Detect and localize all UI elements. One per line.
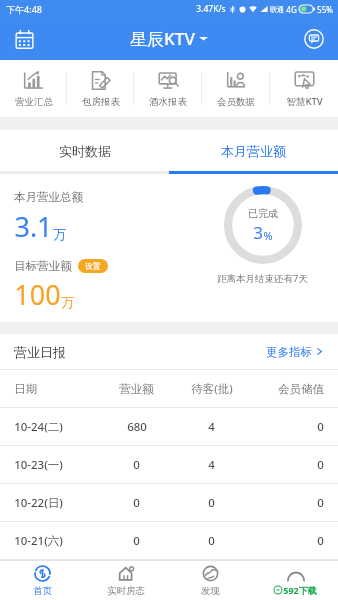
staticText: 智慧KTV xyxy=(286,95,323,108)
staticText: % xyxy=(263,228,273,243)
button[interactable]: 设置 xyxy=(78,259,108,273)
button[interactable]: 发现 xyxy=(168,561,253,600)
button[interactable]: 实时房态 xyxy=(84,561,168,600)
staticText: 更多指标 xyxy=(266,345,312,359)
staticText: 星辰KTV xyxy=(130,27,195,50)
staticText: 本月营业总额 xyxy=(14,190,83,204)
button[interactable]: 营业汇总 xyxy=(0,60,67,117)
staticText: 营业日报 xyxy=(14,344,66,360)
button[interactable]: 酒水报表 xyxy=(134,60,202,117)
staticText: 3.47K/s xyxy=(196,3,226,15)
button[interactable]: 包房报表 xyxy=(67,60,134,117)
staticText: 距离本月结束还有7天 xyxy=(217,272,308,285)
staticText: 0 xyxy=(208,533,215,549)
staticText: 4G xyxy=(286,4,297,15)
staticText: 下午4:48 xyxy=(6,3,42,15)
button[interactable]: Calendar xyxy=(9,24,39,54)
staticText: 0 xyxy=(317,419,324,435)
button[interactable]: 10-24(二) xyxy=(0,408,338,445)
staticText: 0 xyxy=(317,533,324,549)
button[interactable]: 会员数据 xyxy=(202,60,270,117)
staticText: 3 xyxy=(253,221,263,244)
staticText: 酒水报表 xyxy=(149,96,187,108)
button[interactable]: 实时数据 xyxy=(0,130,169,171)
staticText: 4 xyxy=(208,457,215,473)
staticText: 0 xyxy=(133,495,140,511)
button[interactable]: 星辰KTV xyxy=(130,27,208,50)
staticText: 包房报表 xyxy=(82,96,120,108)
staticText: 日期 xyxy=(14,382,37,396)
staticText: 10-21(六) xyxy=(14,533,63,549)
staticText: 营业汇总 xyxy=(15,96,53,108)
button[interactable]: 10-23(一) xyxy=(0,446,338,483)
button[interactable]: 首页 xyxy=(0,561,84,600)
button[interactable]: 本月营业额 xyxy=(169,130,338,171)
staticText: 会员数据 xyxy=(217,96,255,108)
staticText: 10-22(日) xyxy=(14,495,63,511)
staticText: 联通 xyxy=(270,5,284,14)
staticText: 已完成 xyxy=(248,207,278,220)
staticText: 实时数据 xyxy=(59,143,111,159)
staticText: 0 xyxy=(317,495,324,511)
staticText: 55% xyxy=(317,4,333,15)
staticText: 目标营业额 xyxy=(14,259,72,273)
staticText: 万 xyxy=(53,226,66,242)
staticText: 首页 xyxy=(33,585,52,597)
staticText: 592下载 xyxy=(283,584,317,596)
staticText: 3.1 xyxy=(14,208,53,245)
button[interactable]: Messages xyxy=(299,24,329,54)
staticText: 待客(批) xyxy=(191,381,233,397)
button[interactable]: 智慧KTV xyxy=(270,60,338,117)
staticText: 发现 xyxy=(201,585,220,597)
staticText: 设置 xyxy=(85,261,101,271)
staticText: 0 xyxy=(208,495,215,511)
staticText: 10-23(一) xyxy=(14,457,63,473)
staticText: 10-24(二) xyxy=(14,419,63,435)
staticText: 680 xyxy=(127,419,147,435)
button[interactable]: 营业日报 xyxy=(0,334,338,369)
button[interactable]: 10-22(日) xyxy=(0,484,338,521)
staticText: 0 xyxy=(317,457,324,473)
staticText: 会员储值 xyxy=(278,382,324,396)
staticText: 实时房态 xyxy=(107,585,145,597)
staticText: 营业额 xyxy=(119,382,154,396)
staticText: 100 xyxy=(14,276,61,313)
staticText: 万 xyxy=(61,294,74,310)
button[interactable]: 592下载 xyxy=(253,561,338,600)
staticText: 4 xyxy=(208,419,215,435)
staticText: 本月营业额 xyxy=(221,143,286,159)
staticText: 0 xyxy=(133,533,140,549)
staticText: 0 xyxy=(133,457,140,473)
button[interactable]: 10-21(六) xyxy=(0,522,338,559)
